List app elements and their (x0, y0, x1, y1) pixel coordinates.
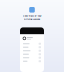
staticText: Driving Lessons (24, 17, 40, 20)
staticText: Keep Track of Your (22, 14, 41, 17)
